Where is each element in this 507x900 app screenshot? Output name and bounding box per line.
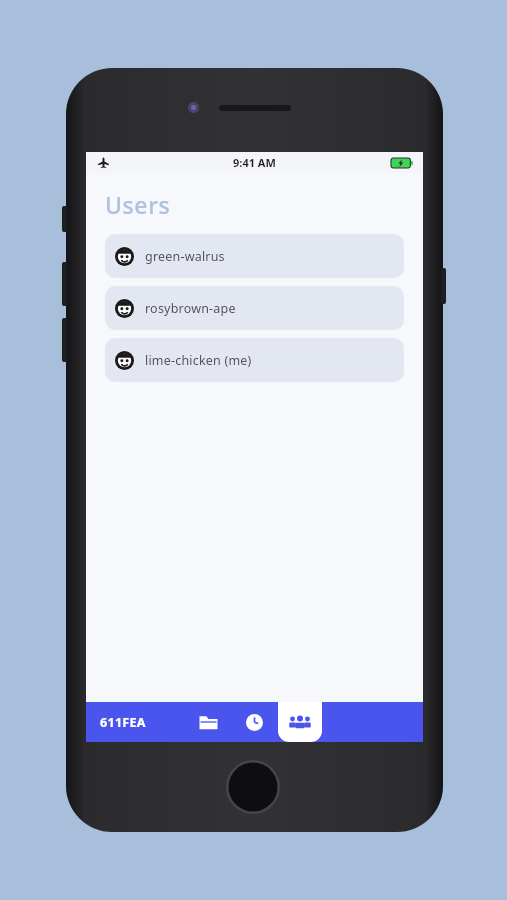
button[interactable]: History bbox=[234, 702, 274, 742]
staticText: 611FEA bbox=[100, 714, 146, 731]
staticText: 9:41 AM bbox=[233, 155, 276, 170]
button[interactable]: green-walrus bbox=[105, 234, 404, 278]
other: Home bbox=[226, 760, 280, 814]
staticText: green-walrus bbox=[145, 248, 225, 265]
staticText: Users bbox=[105, 189, 171, 220]
staticText: lime-chicken (me) bbox=[145, 352, 252, 369]
button[interactable]: Files bbox=[188, 702, 228, 742]
button[interactable]: 611FEA bbox=[100, 714, 146, 731]
staticText: rosybrown-ape bbox=[145, 300, 236, 317]
button[interactable]: Users bbox=[278, 702, 322, 742]
button[interactable]: rosybrown-ape bbox=[105, 286, 404, 330]
button[interactable]: lime-chicken (me) bbox=[105, 338, 404, 382]
